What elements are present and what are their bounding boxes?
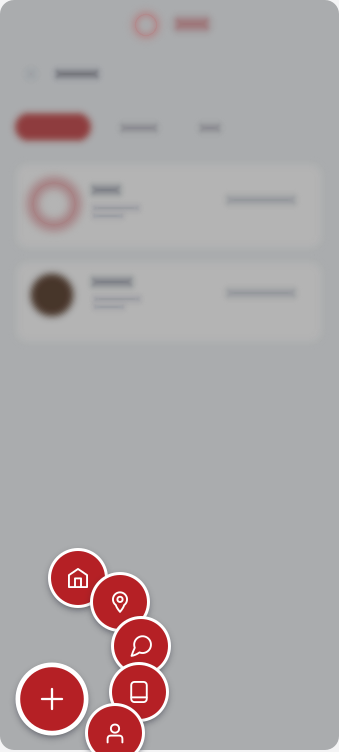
button[interactable]: Home [48, 548, 108, 608]
button[interactable]: Map [90, 572, 150, 632]
button[interactable]: Profile [85, 703, 145, 752]
button[interactable]: Messages [111, 616, 171, 676]
button[interactable]: Library [109, 662, 169, 722]
button[interactable]: Close menu [15, 662, 88, 735]
